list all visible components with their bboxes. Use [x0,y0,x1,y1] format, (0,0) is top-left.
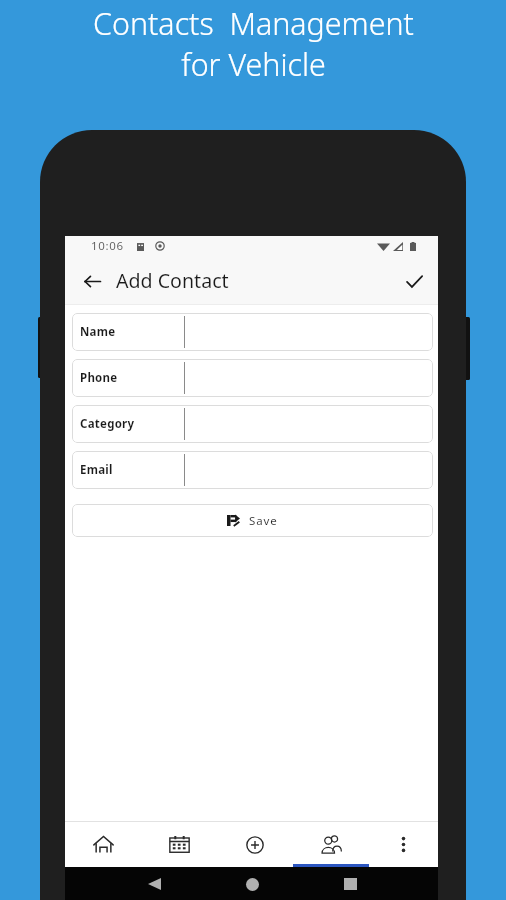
button[interactable]: Home [239,871,265,897]
button[interactable]: Back [141,871,167,897]
staticText: Save [249,513,278,529]
staticText: Email [80,462,113,478]
staticText: Category [80,416,135,432]
button[interactable]: Done [399,266,429,296]
staticText: Contacts Management [93,3,414,44]
button[interactable]: Back [77,266,107,296]
button[interactable]: Home [65,822,141,867]
button[interactable]: Email [72,451,433,489]
staticText: Add Contact [116,267,229,294]
staticText: for Vehicle [181,44,326,85]
button[interactable]: Recent apps [337,871,363,897]
button[interactable]: More options [369,822,438,867]
button[interactable]: Add [217,822,293,867]
button[interactable]: Category [72,405,433,443]
button[interactable]: Name [72,313,433,351]
staticText: Phone [80,370,118,386]
button[interactable]: Calendar [141,822,217,867]
staticText: Name [80,324,116,340]
button[interactable]: Phone [72,359,433,397]
button[interactable]: Save [72,504,433,537]
button[interactable]: Contacts [293,822,369,867]
staticText: 10:06 [91,238,124,254]
